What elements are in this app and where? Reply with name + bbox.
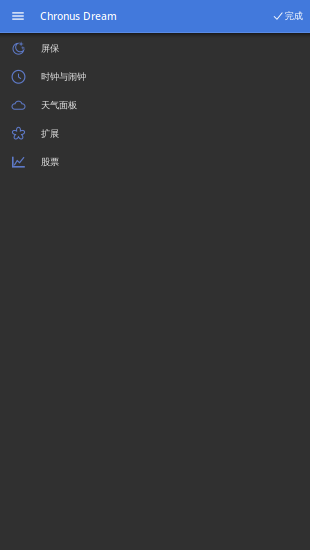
staticText: Chronus Dream [40,9,117,23]
staticText: 扩展 [41,128,59,139]
staticText: 时钟与闹钟 [41,71,86,83]
staticText: 完成 [285,10,303,22]
button[interactable]: 时钟与闹钟 [0,63,310,91]
button[interactable]: 完成 [268,0,310,32]
staticText: 天气面板 [41,99,77,111]
button[interactable]: 屏保 [0,34,310,63]
button[interactable]: 股票 [0,148,310,176]
button[interactable]: 天气面板 [0,91,310,119]
staticText: 股票 [41,156,59,168]
staticText: 屏保 [41,43,59,54]
button[interactable]: Menu [0,0,28,32]
button[interactable]: 扩展 [0,119,310,148]
